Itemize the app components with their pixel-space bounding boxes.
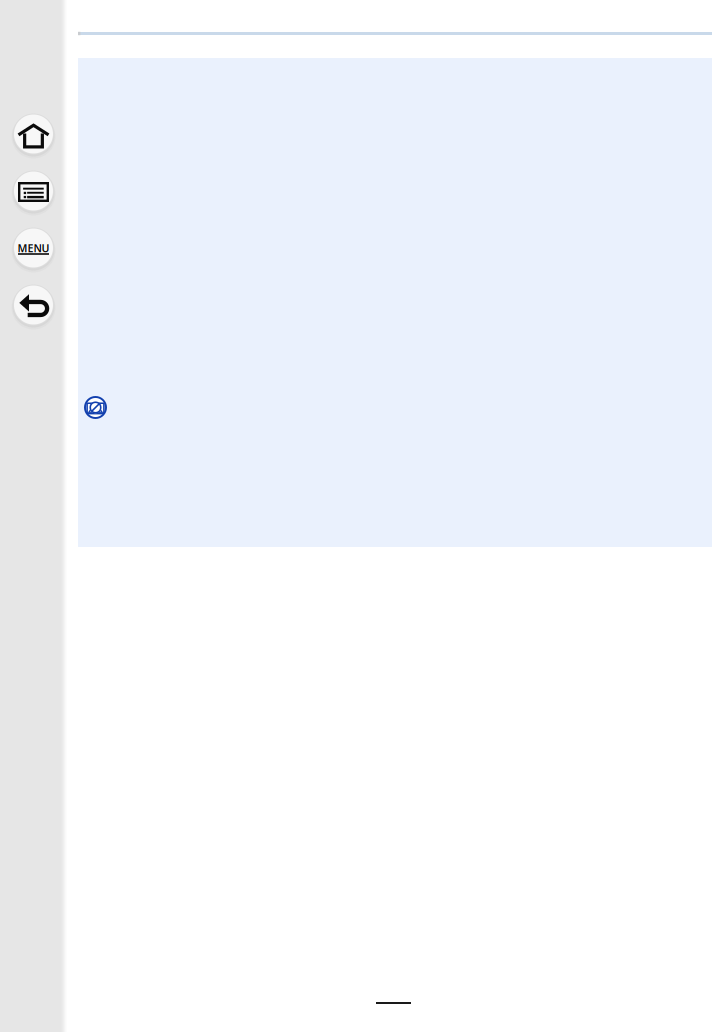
button[interactable]: Home <box>10 111 56 157</box>
button[interactable]: Back <box>10 282 56 328</box>
staticText: MENU <box>17 241 49 255</box>
button[interactable]: Display <box>10 168 56 214</box>
button[interactable]: MENU <box>10 225 56 271</box>
